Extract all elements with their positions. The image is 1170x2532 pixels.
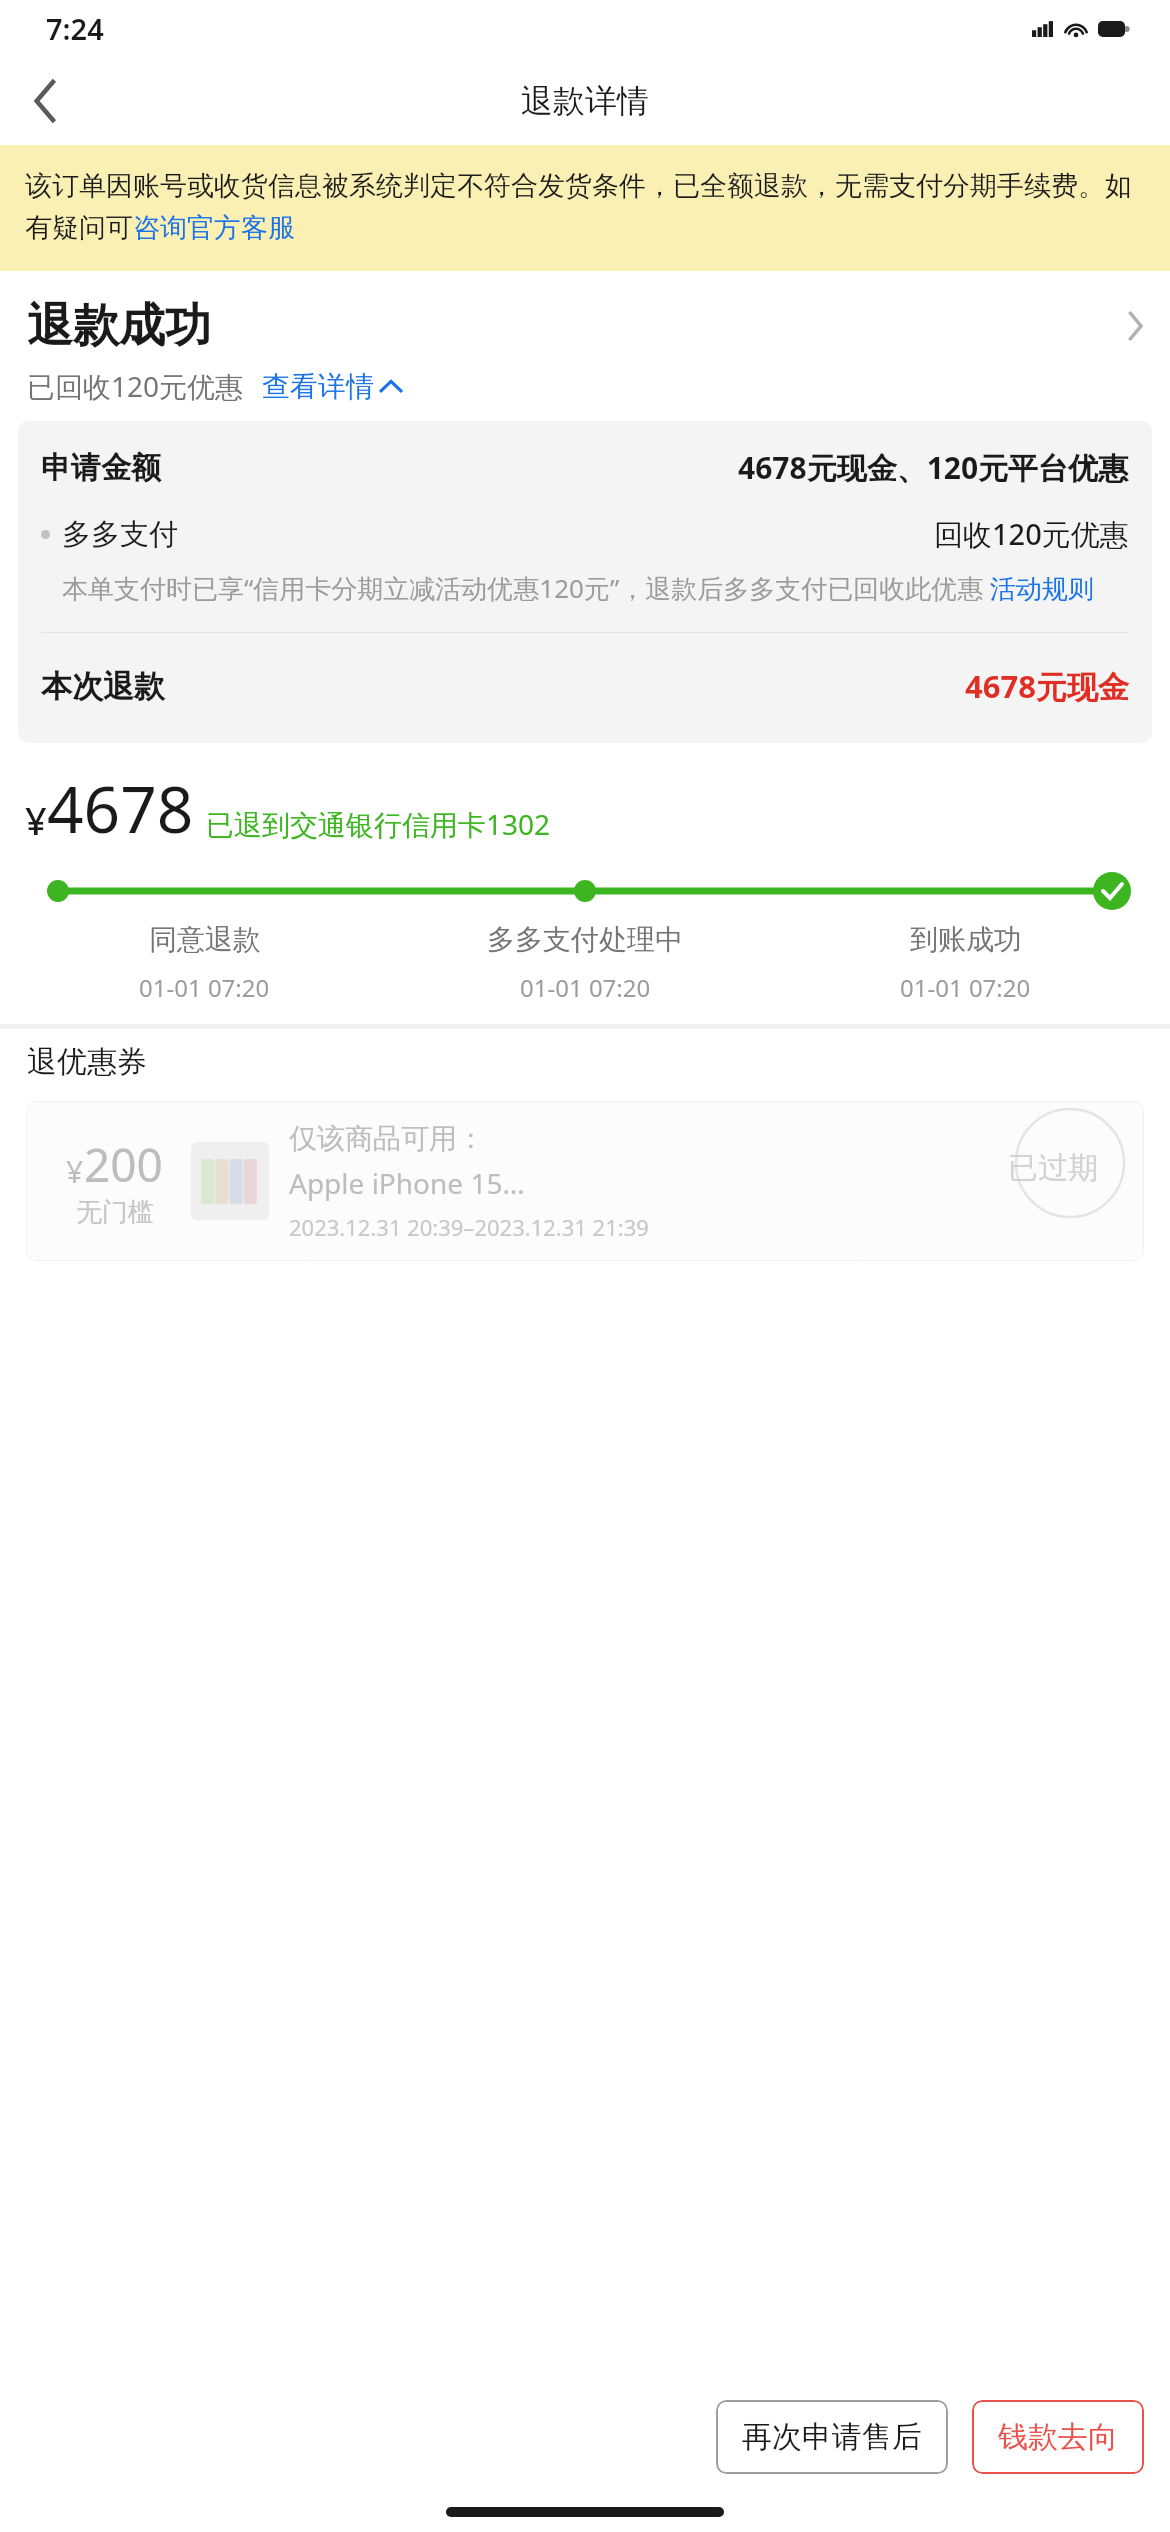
staticText: 多多支付处理中 xyxy=(487,922,683,957)
staticText: 本次退款 xyxy=(41,667,165,706)
staticText: 200 xyxy=(84,1133,163,1196)
staticText: 同意退款 xyxy=(149,922,261,957)
staticText: 钱款去向 xyxy=(998,2418,1118,2456)
staticText: 01-01 07:20 xyxy=(520,971,651,1004)
staticText: 回收120元优惠 xyxy=(934,514,1129,554)
staticText: 仅该商品可用： xyxy=(289,1121,485,1156)
staticText: 退款详情 xyxy=(521,81,649,121)
button[interactable]: 退款成功 xyxy=(0,297,1170,355)
staticText: 已过期 xyxy=(1008,1149,1098,1187)
staticText: 已退到交通银行信用卡1302 xyxy=(206,805,551,843)
staticText: 4678元现金、120元平台优惠 xyxy=(738,447,1129,488)
staticText: 本单支付时已享“信用卡分期立减活动优惠120元”，退款后多多支付已回收此优惠 活… xyxy=(62,570,1095,606)
staticText: 退优惠券 xyxy=(27,1043,147,1081)
button[interactable]: 钱款去向 xyxy=(972,2400,1144,2474)
staticText: 退款成功 xyxy=(27,297,211,355)
staticText: 01-01 07:20 xyxy=(139,971,270,1004)
button[interactable]: Back xyxy=(14,70,76,132)
staticText: 2023.12.31 20:39–2023.12.31 21:39 xyxy=(289,1212,649,1242)
staticText: 4678 xyxy=(47,765,194,852)
staticText: 多多支付 xyxy=(62,516,178,553)
button[interactable]: 查看详情 xyxy=(262,369,402,404)
staticText: 01-01 07:20 xyxy=(900,971,1031,1004)
staticText: 查看详情 xyxy=(262,369,374,404)
button[interactable]: 再次申请售后 xyxy=(716,2400,948,2474)
staticText: 该订单因账号或收货信息被系统判定不符合发货条件，已全额退款，无需支付分期手续费。… xyxy=(25,169,1148,245)
staticText: 到账成功 xyxy=(910,922,1022,957)
staticText: ¥ xyxy=(25,794,47,846)
staticText: 7:24 xyxy=(46,9,104,48)
button[interactable]: ¥ xyxy=(26,1101,1144,1261)
staticText: 4678元现金 xyxy=(965,665,1129,707)
staticText: 申请金额 xyxy=(41,449,161,487)
staticText: 再次申请售后 xyxy=(742,2418,922,2456)
staticText: 已回收120元优惠 xyxy=(27,367,244,405)
staticText: ¥ xyxy=(66,1151,84,1192)
staticText: 无门槛 xyxy=(76,1196,154,1229)
staticText: Apple iPhone 15… xyxy=(289,1164,525,1202)
